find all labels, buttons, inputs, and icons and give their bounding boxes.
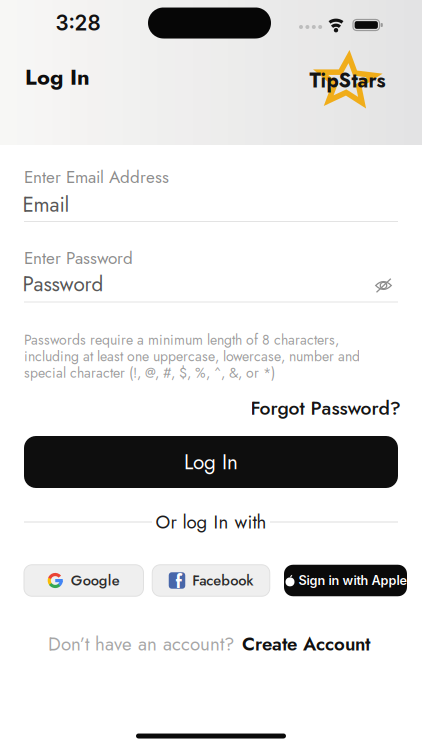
button[interactable]: f — [152, 565, 270, 596]
staticText: 3:28 — [55, 10, 100, 35]
button[interactable]: Log In — [24, 436, 398, 488]
staticText: Create Account — [242, 630, 370, 657]
staticText: Email — [22, 190, 69, 219]
staticText: TipStars — [309, 66, 385, 95]
staticText: Or log In with — [155, 508, 266, 535]
staticText: Enter Password — [24, 246, 133, 270]
button[interactable]: Sign in with Apple — [284, 565, 407, 596]
button[interactable]: Create Account — [242, 630, 370, 657]
staticText: Password — [22, 269, 103, 299]
staticText: Log In — [25, 61, 90, 93]
staticText: Enter Email Address — [24, 165, 169, 189]
staticText: Passwords require a minimum length of 8 … — [24, 330, 339, 350]
staticText: Facebook — [192, 570, 253, 591]
button[interactable]: Show password — [368, 273, 398, 297]
staticText: Google — [71, 570, 120, 591]
staticText: Sign in with Apple — [298, 573, 406, 588]
button[interactable]: Forgot Password? — [250, 394, 400, 422]
staticText: including at least one uppercase, lowerc… — [24, 346, 360, 367]
button[interactable]: Google — [24, 565, 143, 596]
staticText: Log In — [184, 447, 238, 477]
staticText: special character (!, @, #, $, %, ^, &, … — [24, 363, 275, 383]
staticText: Forgot Password? — [250, 394, 400, 422]
staticText: Don’t have an account? — [48, 630, 234, 657]
staticText: f — [175, 568, 181, 595]
